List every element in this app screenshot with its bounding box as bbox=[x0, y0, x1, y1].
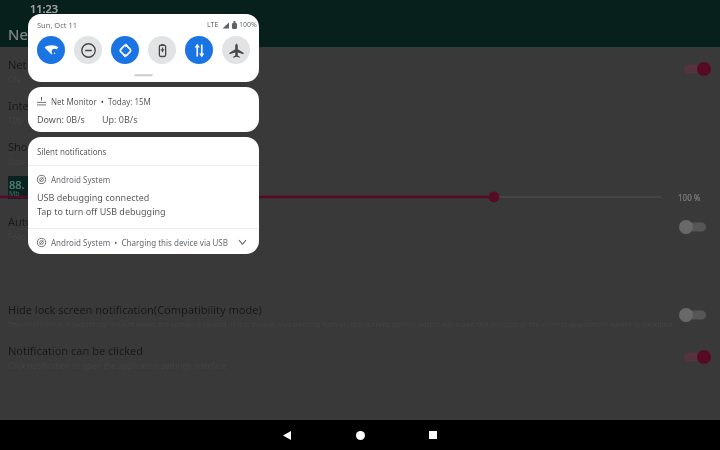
staticText: Down: 0B/s bbox=[37, 113, 85, 125]
staticText: Sho bbox=[8, 139, 28, 154]
staticText: Up: 0B/s bbox=[102, 113, 138, 125]
button[interactable]: Inte bbox=[8, 98, 50, 126]
staticText: Android System bbox=[51, 174, 111, 185]
staticText: 88. bbox=[9, 177, 25, 192]
button[interactable]: Back bbox=[265, 420, 309, 450]
button[interactable]: Do not disturb bbox=[74, 36, 102, 64]
button[interactable]: Airplane mode bbox=[222, 36, 250, 64]
staticText: USB debugging connected bbox=[37, 191, 150, 203]
button[interactable]: Wi-Fi bbox=[37, 36, 65, 64]
other: Expand notification bbox=[239, 240, 246, 247]
staticText: 100 % bbox=[678, 192, 701, 203]
button[interactable]: Battery saver bbox=[148, 36, 176, 64]
staticText: Net Monitor • Today: 15M bbox=[51, 96, 151, 107]
staticText: Inte bbox=[8, 98, 29, 113]
button[interactable]: Notification can be clicked bbox=[8, 343, 673, 371]
button[interactable]: Enabled toggle bbox=[683, 61, 711, 77]
button[interactable]: Enabled toggle bbox=[683, 349, 711, 365]
staticText: Mb bbox=[9, 189, 20, 199]
button[interactable]: Mobile data bbox=[185, 36, 213, 64]
staticText: Sun, Oct 11 bbox=[37, 20, 78, 30]
staticText: Auto bbox=[8, 214, 33, 229]
staticText: Net bbox=[8, 57, 27, 72]
button[interactable]: Disabled toggle bbox=[679, 219, 707, 235]
button[interactable]: Auto rotate bbox=[111, 36, 139, 64]
staticText: Silent notifications bbox=[37, 146, 107, 157]
button[interactable]: Sho bbox=[8, 139, 50, 167]
button[interactable]: Android System • Charging this device vi… bbox=[28, 229, 259, 254]
button[interactable]: Home bbox=[338, 420, 382, 450]
staticText: Notification can be clicked bbox=[8, 343, 144, 358]
button[interactable]: Disabled toggle bbox=[679, 307, 707, 323]
button[interactable]: Auto bbox=[8, 214, 50, 242]
staticText: Android System • Charging this device vi… bbox=[51, 237, 228, 248]
staticText: Net bbox=[8, 24, 34, 44]
button[interactable]: Hide lock screen notification(Compatibil… bbox=[8, 302, 673, 329]
button[interactable]: Net bbox=[8, 57, 50, 85]
staticText: LTE bbox=[207, 20, 219, 30]
button[interactable]: Recent apps bbox=[411, 420, 455, 450]
staticText: 100% bbox=[239, 20, 257, 30]
staticText: Tap to turn off USB debugging bbox=[37, 205, 166, 217]
button[interactable]: Net Monitor • Today: 15M bbox=[28, 87, 259, 132]
button[interactable]: Android System bbox=[28, 166, 259, 228]
staticText: Hide lock screen notification(Compatibil… bbox=[8, 302, 262, 317]
staticText: 11:23 bbox=[30, 1, 59, 16]
